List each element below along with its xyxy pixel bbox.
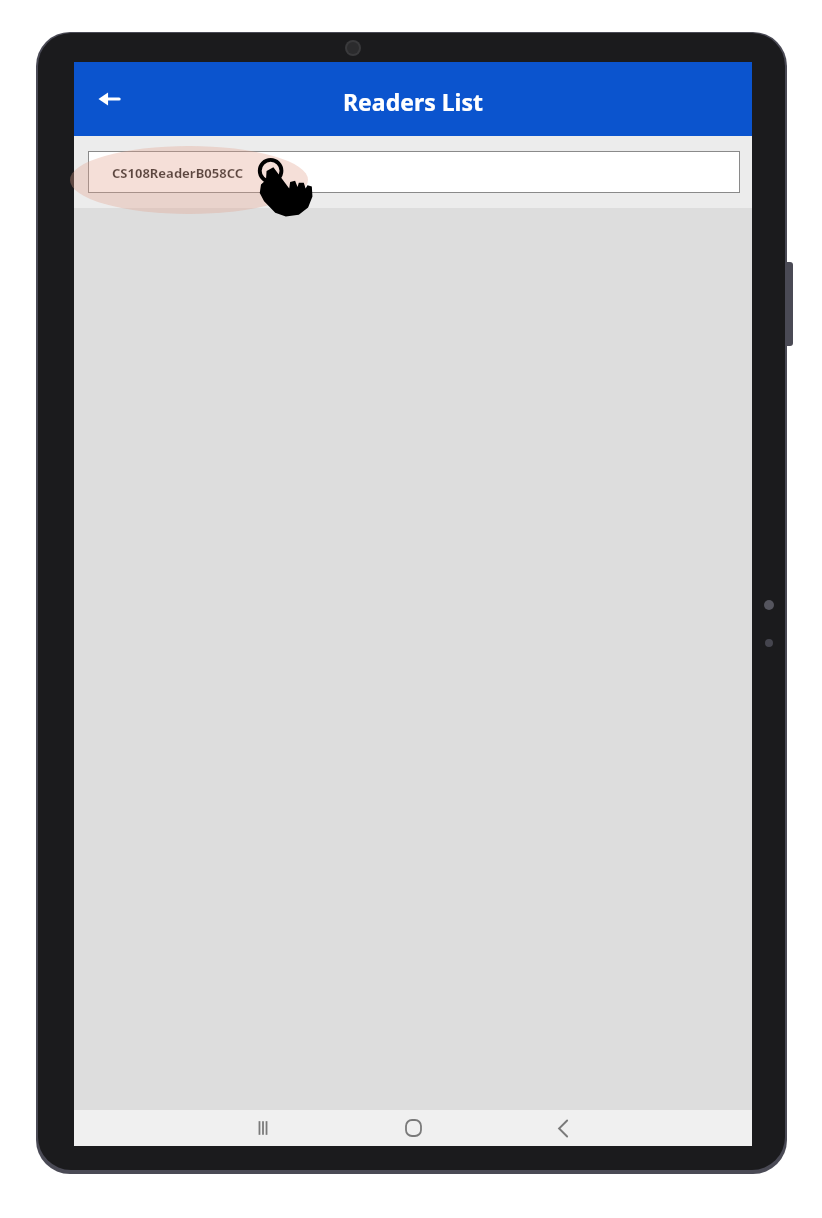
button[interactable]: Home bbox=[374, 1110, 452, 1146]
button[interactable]: Back bbox=[86, 76, 132, 122]
button[interactable]: Back bbox=[524, 1110, 602, 1146]
button[interactable]: Recents bbox=[224, 1110, 302, 1146]
staticText: CS108ReaderB058CC bbox=[112, 164, 244, 182]
staticText: Readers List bbox=[74, 86, 752, 160]
button[interactable]: CS108ReaderB058CC bbox=[88, 151, 740, 193]
